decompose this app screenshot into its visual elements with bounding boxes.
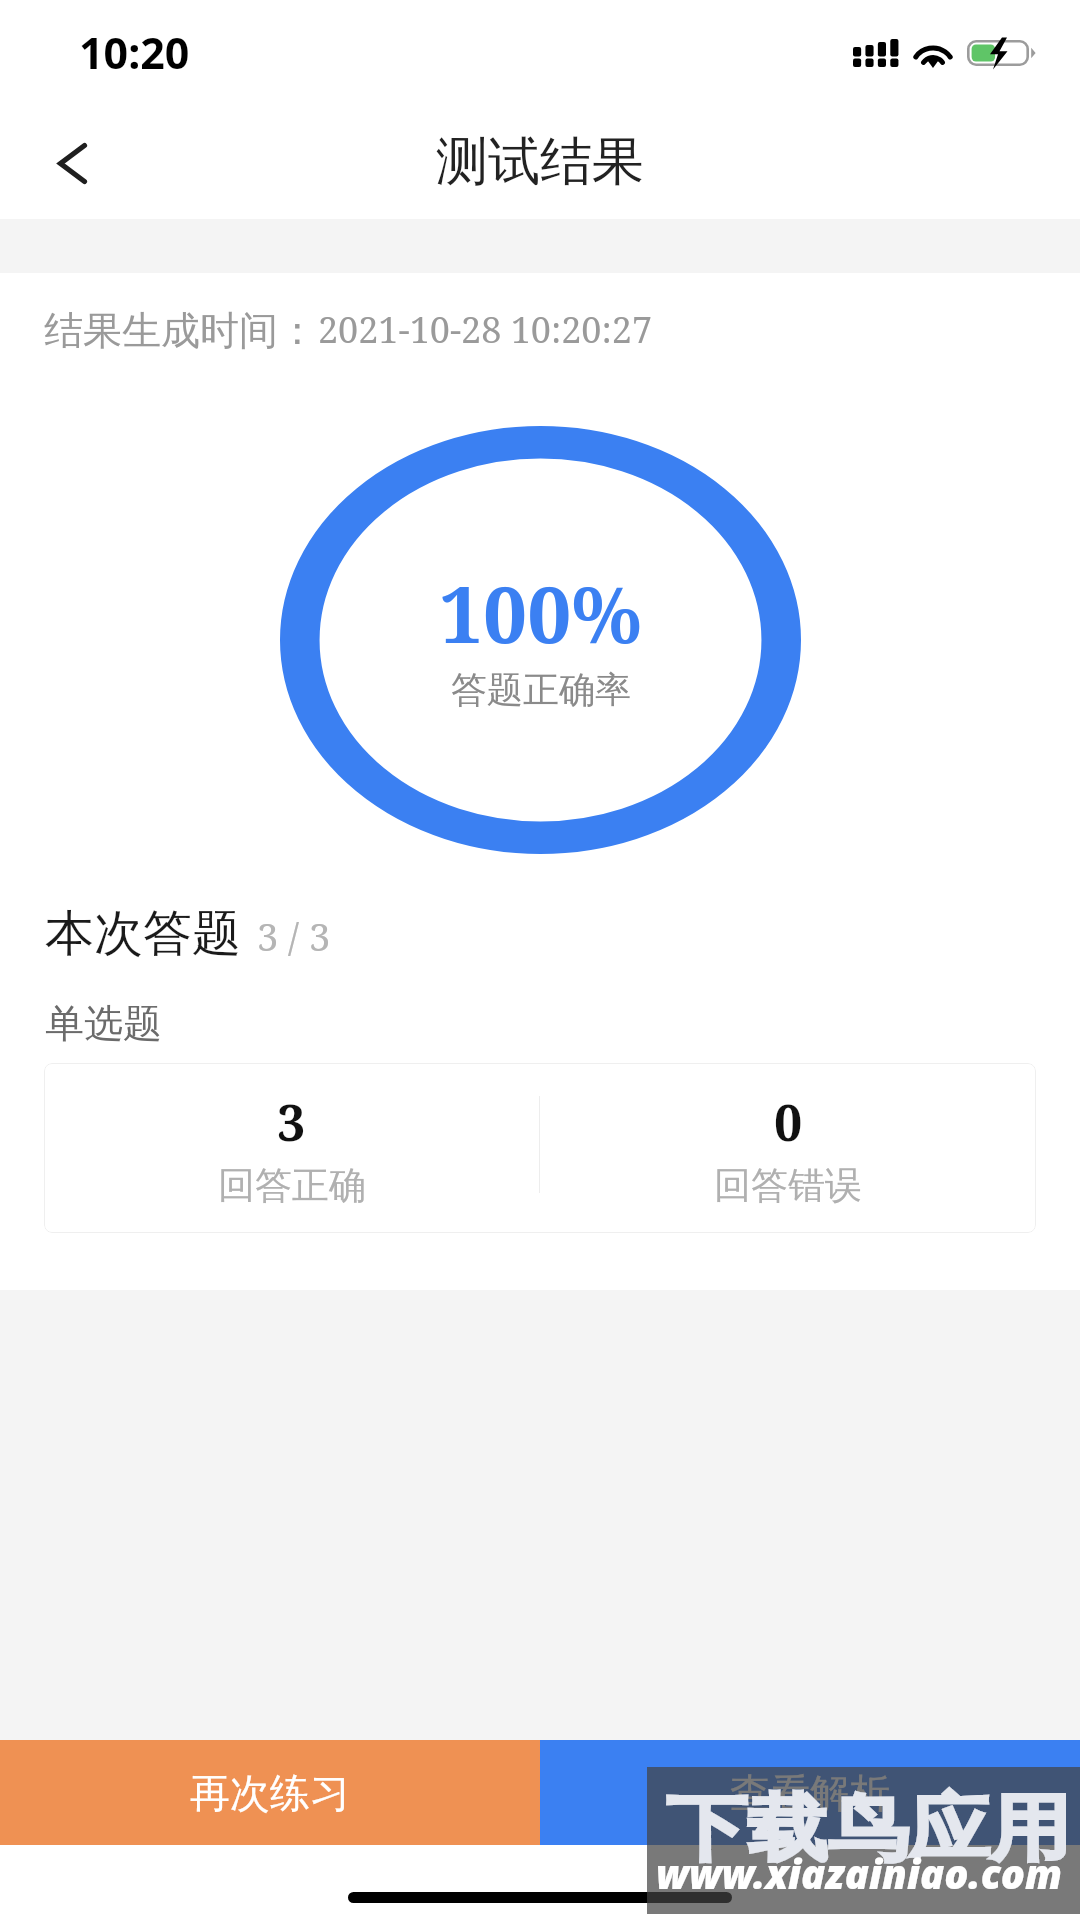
- staticText: 回答错误: [714, 1162, 862, 1209]
- staticText: 100%: [439, 560, 642, 666]
- button[interactable]: Back: [20, 100, 124, 219]
- button[interactable]: 查看解析: [540, 1740, 1080, 1845]
- staticText: 答题正确率: [451, 667, 631, 712]
- staticText: 查看解析: [730, 1768, 890, 1818]
- staticText: 下载鸟应用: [666, 1784, 1071, 1875]
- staticText: 2021-10-28 10:20:27: [318, 305, 653, 354]
- staticText: www.xiazainiao.com: [656, 1846, 1063, 1900]
- staticText: 3: [277, 1088, 306, 1156]
- staticText: 测试结果: [436, 129, 644, 195]
- staticText: 本次答题: [45, 903, 241, 965]
- staticText: 再次练习: [190, 1768, 350, 1818]
- button[interactable]: 再次练习: [0, 1740, 540, 1845]
- staticText: 单选题: [45, 999, 162, 1048]
- staticText: 回答正确: [218, 1162, 366, 1209]
- staticText: 结果生成时间：: [44, 306, 317, 355]
- staticText: 3 / 3: [257, 910, 331, 962]
- staticText: 0: [774, 1088, 803, 1156]
- staticText: 10:20: [79, 23, 190, 82]
